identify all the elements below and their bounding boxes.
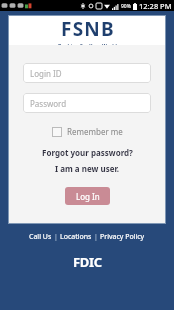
staticText: Log In: [76, 191, 100, 202]
staticText: FDIC: [73, 253, 102, 271]
button[interactable]: Forgot your password?: [42, 147, 133, 158]
staticText: |: [54, 232, 58, 242]
button[interactable]: Locations: [58, 232, 94, 242]
staticText: FSNB: [61, 16, 115, 42]
staticText: 90%: [121, 3, 131, 10]
staticText: Banking For Your World: [58, 43, 117, 45]
staticText: |: [94, 232, 98, 242]
other: FDIC Member: [0, 253, 174, 271]
staticText: Remember me: [67, 126, 123, 137]
button[interactable]: Privacy Policy: [98, 232, 147, 242]
button[interactable]: I am a new user.: [55, 163, 120, 174]
button[interactable]: Password: [23, 93, 151, 113]
button[interactable]: Login ID: [23, 63, 151, 83]
staticText: 12:28 PM: [139, 1, 172, 11]
button[interactable]: Remember me: [50, 124, 125, 139]
button[interactable]: Call Us: [27, 232, 54, 242]
staticText: Login ID: [30, 68, 62, 79]
staticText: Password: [30, 98, 67, 109]
button[interactable]: Log In: [65, 187, 110, 205]
